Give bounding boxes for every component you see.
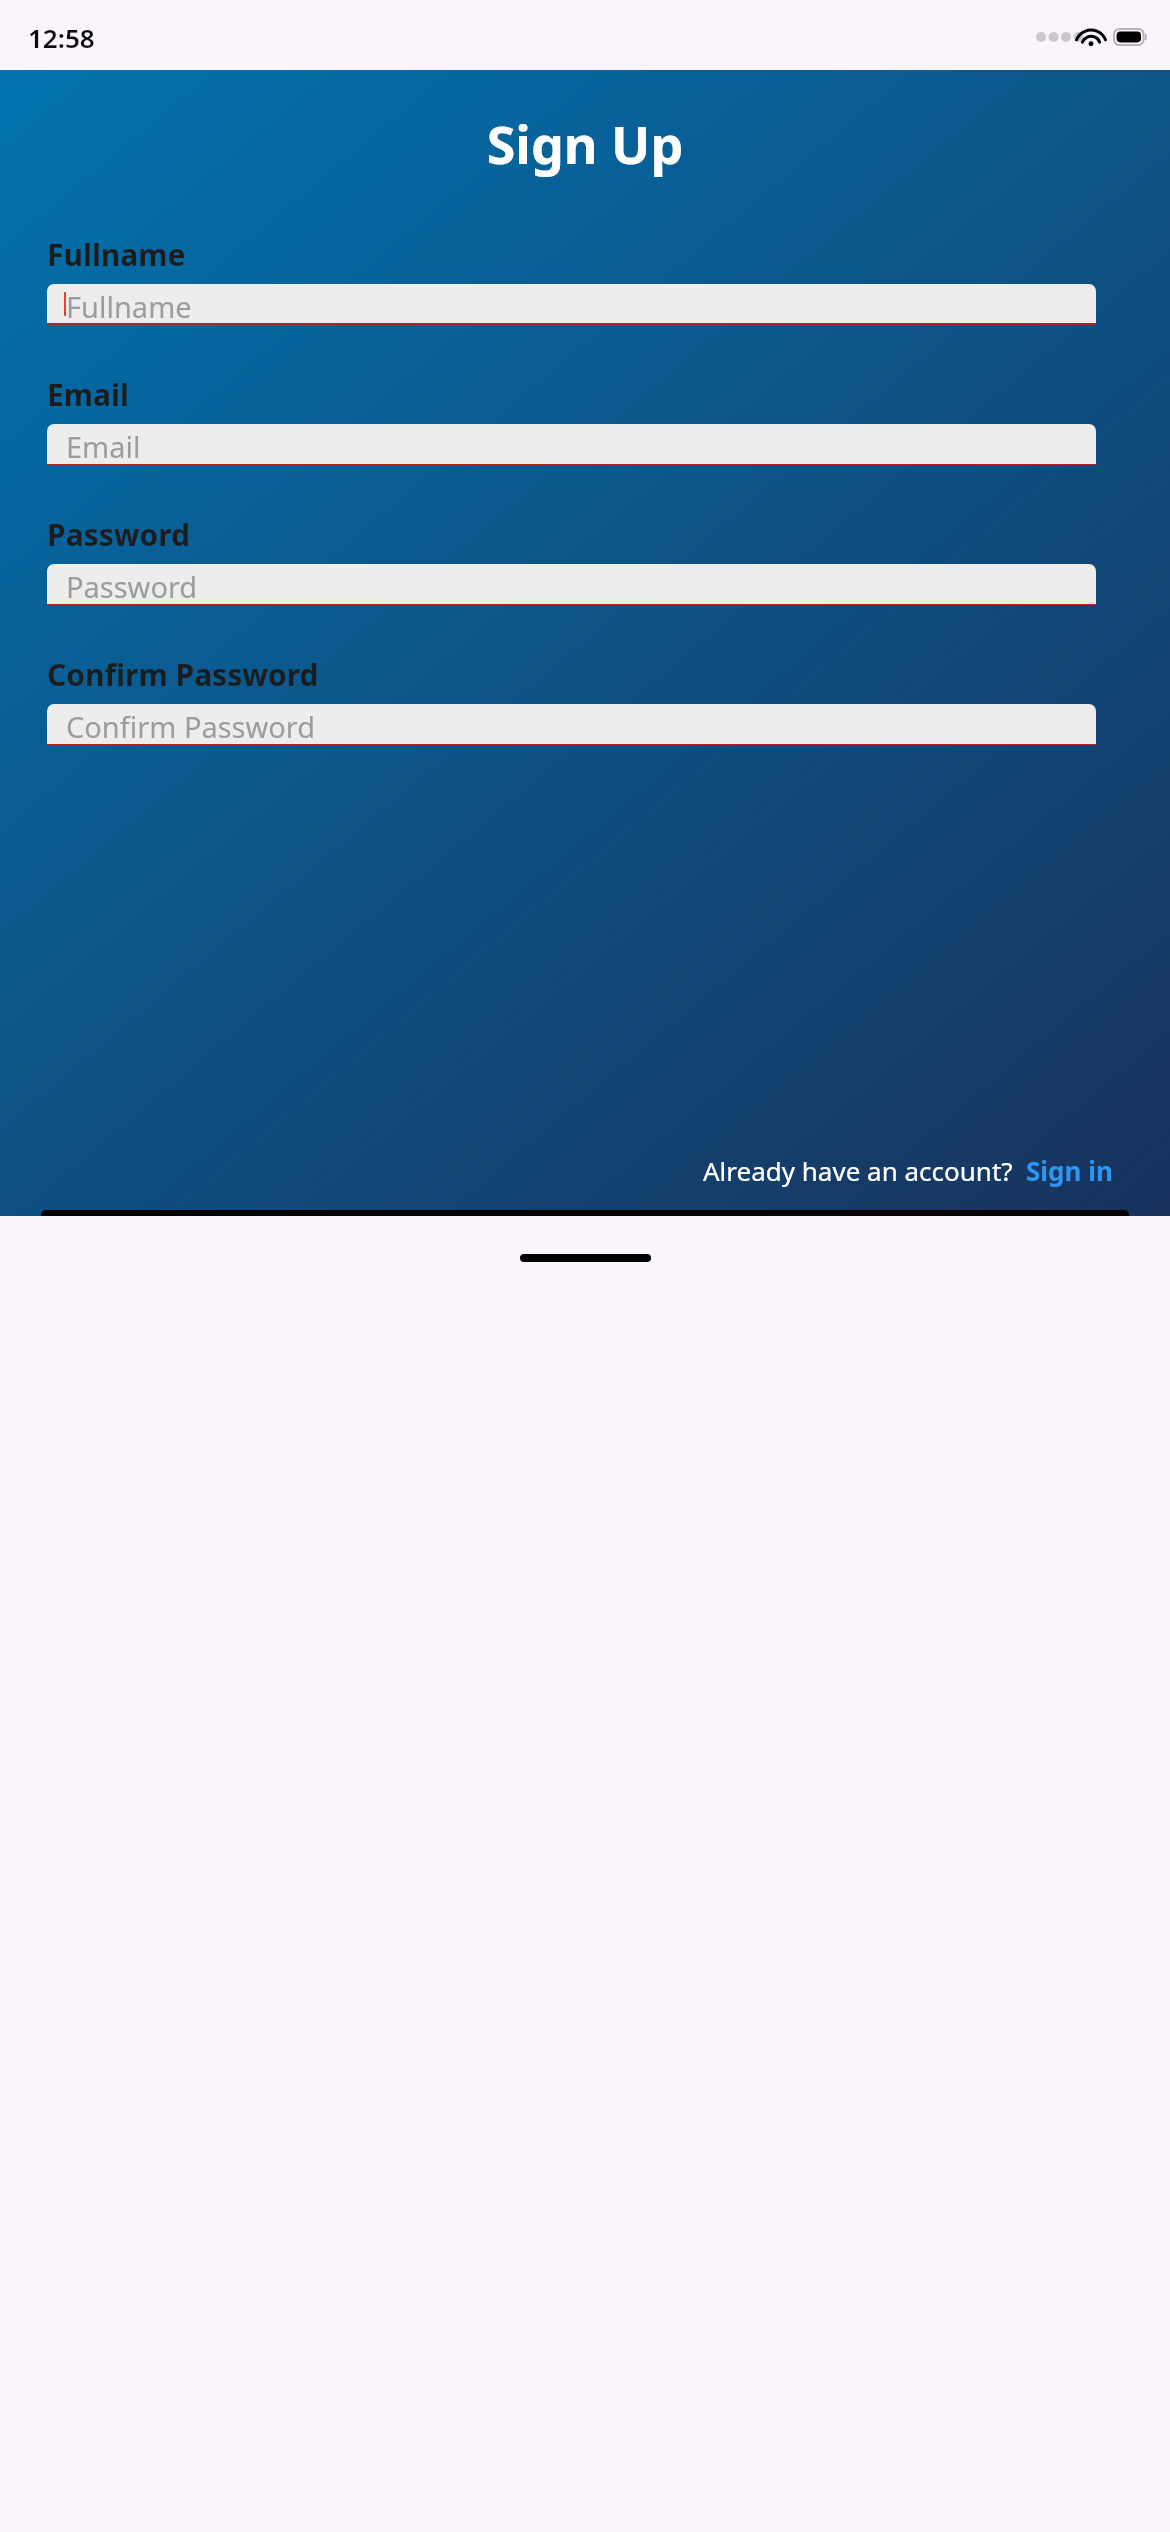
button[interactable]: Sign in (1025, 1153, 1114, 1188)
staticText: Password (66, 567, 198, 604)
button[interactable]: Password (47, 564, 1096, 605)
staticText: Password (47, 514, 190, 555)
staticText: Email (66, 427, 141, 464)
staticText: Sign in (1026, 1153, 1113, 1188)
button[interactable]: Email (47, 424, 1096, 465)
staticText: 12:58 (28, 20, 95, 55)
other: Home indicator (520, 1254, 651, 1262)
staticText: Confirm Password (47, 654, 319, 695)
button[interactable]: Confirm Password (47, 704, 1096, 745)
staticText: Sign Up (0, 108, 1170, 179)
staticText: Email (47, 374, 129, 415)
staticText: Already have an account? (703, 1153, 1013, 1188)
button[interactable]: Fullname (47, 284, 1096, 325)
staticText: Fullname (66, 287, 192, 323)
staticText: Confirm Password (66, 707, 316, 744)
staticText: Fullname (47, 234, 186, 275)
